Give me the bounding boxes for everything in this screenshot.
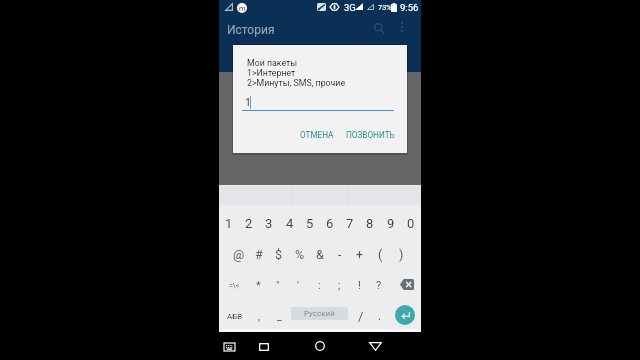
button[interactable]: Enter	[395, 305, 415, 325]
staticText: 5	[306, 216, 314, 231]
button[interactable]: &	[310, 240, 330, 269]
button[interactable]: #	[249, 240, 269, 269]
button[interactable]: :	[309, 271, 329, 300]
button[interactable]: _	[269, 301, 289, 331]
staticText: ПОЗВОНИТЬ	[346, 130, 395, 140]
staticText: АБВ	[227, 312, 243, 321]
staticText: 7	[346, 216, 354, 231]
staticText: *	[256, 279, 261, 292]
staticText: &	[316, 247, 324, 262]
staticText: ,	[258, 310, 261, 323]
staticText: 3G	[344, 2, 356, 13]
button[interactable]: @	[229, 240, 249, 269]
button[interactable]: АБВ	[224, 301, 245, 331]
button[interactable]: ПОЗВОНИТЬ	[340, 126, 401, 144]
button[interactable]: 7	[340, 208, 360, 238]
staticText: Мои пакеты	[247, 58, 298, 68]
button[interactable]: 0	[401, 208, 421, 238]
staticText: 6	[326, 216, 334, 231]
button[interactable]: Русский	[291, 307, 348, 320]
staticText: 9:56	[400, 2, 419, 13]
button[interactable]: .	[370, 301, 390, 331]
button[interactable]: $	[269, 240, 289, 269]
button[interactable]: +	[350, 240, 370, 269]
staticText: 9	[387, 216, 395, 231]
staticText: $	[275, 247, 283, 262]
staticText: -	[338, 247, 342, 262]
staticText: 3	[265, 216, 273, 231]
staticText: !	[358, 279, 361, 292]
staticText: ;	[338, 279, 341, 292]
staticText: Русский	[304, 309, 335, 318]
button[interactable]: ?	[369, 271, 389, 300]
button[interactable]: More options	[392, 17, 412, 37]
button[interactable]: 3	[259, 208, 279, 238]
staticText: ?	[376, 279, 382, 292]
button[interactable]: 2	[239, 208, 259, 238]
staticText: @	[233, 247, 245, 262]
button[interactable]: /	[351, 301, 371, 331]
staticText: m	[239, 4, 246, 13]
staticText: :	[318, 279, 321, 292]
staticText: 2>Минуты, SMS, прочие	[247, 78, 346, 88]
staticText: )	[399, 247, 404, 262]
button[interactable]: 6	[320, 208, 340, 238]
staticText: /	[358, 309, 364, 324]
staticText: .	[378, 309, 382, 323]
button[interactable]: Search	[368, 17, 392, 41]
button[interactable]: )	[391, 240, 411, 269]
button[interactable]: %	[290, 240, 310, 269]
button[interactable]: ;	[329, 271, 349, 300]
button[interactable]: =\<	[224, 271, 244, 300]
staticText: 0	[407, 216, 415, 231]
button[interactable]: '	[288, 271, 308, 300]
button[interactable]: *	[248, 271, 268, 300]
staticText: ОТМЕНА	[300, 130, 334, 140]
button[interactable]: Home	[299, 332, 339, 360]
staticText: 4	[286, 216, 294, 231]
button[interactable]: ,	[249, 301, 269, 331]
button[interactable]: !	[349, 271, 369, 300]
staticText: %	[295, 247, 305, 262]
staticText: '	[297, 279, 299, 292]
button[interactable]: -	[330, 240, 350, 269]
staticText: #	[255, 247, 263, 262]
button[interactable]: 4	[280, 208, 300, 238]
staticText: История	[227, 23, 275, 37]
staticText: 1>Интернет	[247, 68, 296, 78]
staticText: "	[276, 279, 280, 292]
button[interactable]: 1	[219, 208, 239, 238]
staticText: 2	[245, 216, 253, 231]
staticText: 73%	[378, 3, 392, 12]
button[interactable]: ОТМЕНА	[294, 126, 340, 144]
staticText: 1	[225, 216, 233, 231]
button[interactable]: (	[370, 240, 390, 269]
button[interactable]: 9	[381, 208, 401, 238]
button[interactable]: "	[268, 271, 288, 300]
button[interactable]: Backspace	[395, 273, 419, 295]
button[interactable]: 8	[360, 208, 380, 238]
button[interactable]: Hide keyboard	[219, 332, 253, 360]
staticText: 1	[245, 96, 251, 108]
button[interactable]: Back	[354, 332, 394, 360]
button[interactable]: Recents	[253, 332, 289, 360]
staticText: 8	[366, 216, 374, 231]
staticText: (	[378, 247, 383, 262]
staticText: +	[356, 247, 364, 262]
button[interactable]: 5	[300, 208, 320, 238]
staticText: _	[277, 310, 282, 323]
staticText: =\<	[229, 282, 240, 290]
